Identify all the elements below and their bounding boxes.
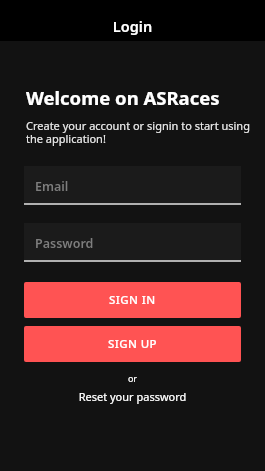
staticText: Login [0,16,265,36]
button[interactable]: Reset your password [24,389,241,404]
staticText: Create your account or signin to start u… [26,118,250,146]
button[interactable]: SIGN UP [24,326,241,362]
button[interactable]: Email [24,166,241,205]
staticText: SIGN IN [109,292,156,308]
staticText: Reset your password [24,389,241,404]
staticText: or [24,372,241,384]
staticText: Password [35,235,94,252]
staticText: Email [35,178,69,195]
button[interactable]: Password [24,223,241,262]
staticText: Welcome on ASRaces [26,85,220,110]
staticText: SIGN UP [108,336,157,352]
button[interactable]: SIGN IN [24,282,241,318]
